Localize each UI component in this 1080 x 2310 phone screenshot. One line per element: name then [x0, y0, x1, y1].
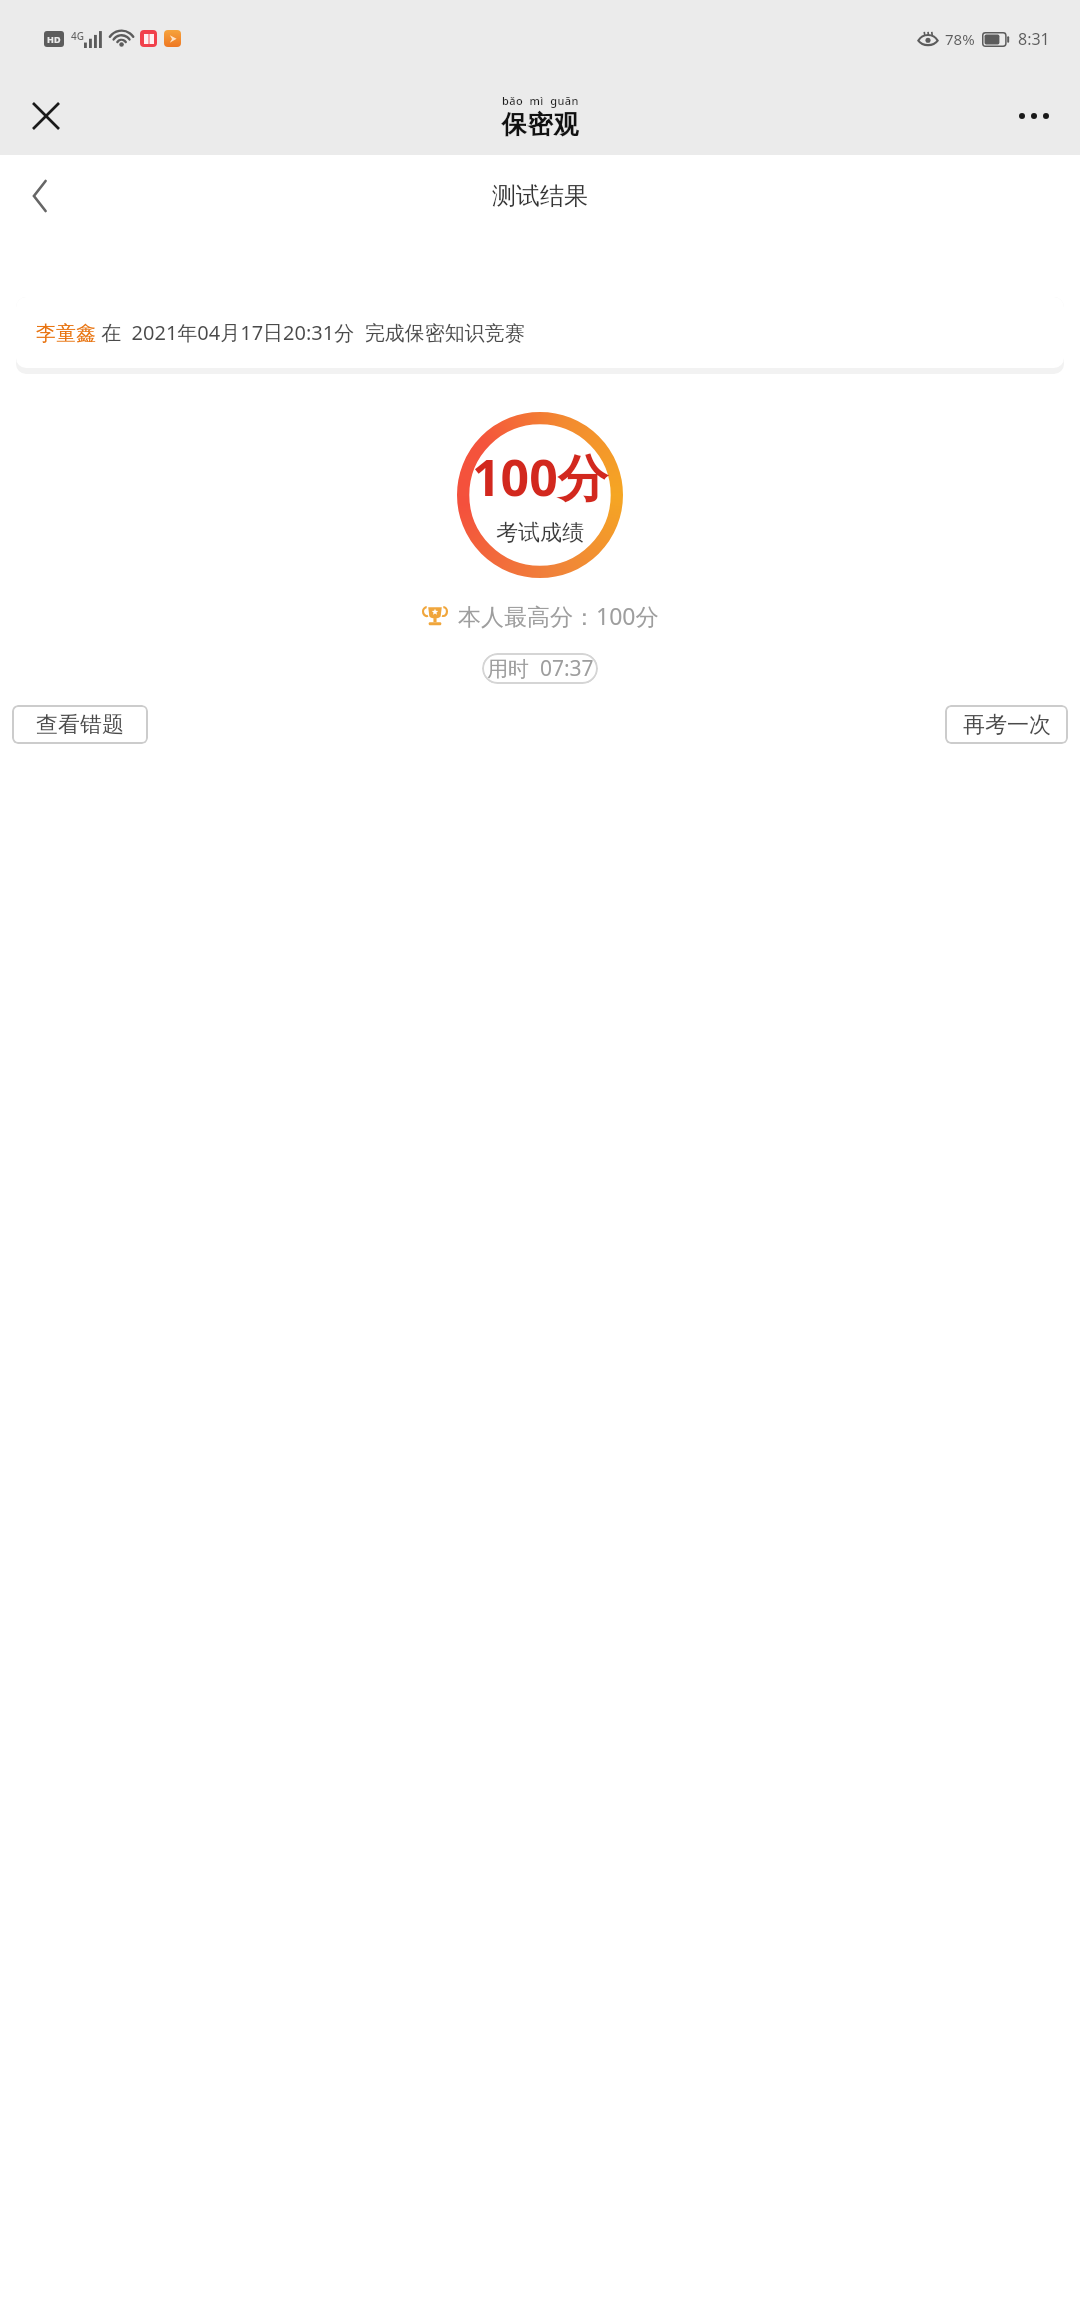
staticText: HD [47, 33, 61, 45]
button[interactable]: 查看错题 [12, 705, 148, 744]
staticText: 78% [945, 29, 975, 49]
staticText: 查看错题 [36, 711, 124, 739]
button[interactable]: 李童鑫 在 2021年04月17日20:31分 完成保密知识竞赛 [16, 297, 1064, 368]
button[interactable]: Close [18, 88, 74, 144]
staticText: 考试成绩 [496, 519, 584, 547]
staticText: 8:31 [1018, 28, 1050, 50]
button[interactable]: 再考一次 [945, 705, 1068, 744]
staticText: 100分 [472, 443, 608, 511]
button[interactable]: More options [1006, 88, 1062, 144]
staticText: 再考一次 [963, 711, 1051, 739]
staticText: bǎo mì guān [502, 93, 579, 108]
staticText: 用时 07:37 [487, 654, 594, 683]
button[interactable]: 用时 07:37 [482, 653, 598, 684]
staticText: 本人最高分：100分 [458, 600, 659, 631]
staticText: 保密观 [501, 109, 579, 140]
staticText: 李童鑫 在 2021年04月17日20:31分 完成保密知识竞赛 [36, 319, 525, 346]
staticText: 测试结果 [492, 181, 588, 211]
button[interactable]: Back [8, 164, 72, 228]
staticText: 4G [71, 29, 84, 43]
